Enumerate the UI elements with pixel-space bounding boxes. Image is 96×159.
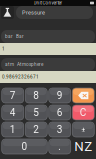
button[interactable]: 5 — [25, 105, 47, 120]
button[interactable]: ± — [72, 122, 94, 137]
button[interactable]: 3 — [49, 122, 71, 137]
staticText: 1 — [10, 124, 16, 135]
button[interactable]: atm — [1, 58, 95, 71]
staticText: 8 — [33, 90, 39, 101]
staticText: bar — [5, 34, 13, 39]
button[interactable]: . — [49, 139, 71, 154]
staticText: 6 — [57, 107, 63, 118]
button[interactable]: 1 — [2, 122, 24, 137]
staticText: . — [58, 141, 61, 152]
button[interactable]: Delete — [72, 88, 94, 103]
staticText: Bar — [16, 34, 24, 39]
button[interactable]: Pressure — [16, 6, 93, 19]
staticText: C — [80, 107, 87, 118]
staticText: 0 — [21, 141, 27, 152]
staticText: Pressure — [22, 9, 45, 16]
button[interactable]: 8 — [25, 88, 47, 103]
button[interactable]: 2 — [25, 122, 47, 137]
staticText: 3 — [57, 124, 63, 135]
staticText: 2 — [33, 124, 39, 135]
staticText: NZ — [74, 139, 92, 154]
button[interactable]: 7 — [2, 88, 24, 103]
staticText: 0.98692326671 — [2, 74, 39, 80]
staticText: 5 — [33, 107, 39, 118]
button[interactable]: 9 — [49, 88, 71, 103]
button[interactable]: 6 — [49, 105, 71, 120]
staticText: 4 — [10, 107, 16, 118]
staticText: atm — [5, 62, 14, 67]
button[interactable]: C — [72, 105, 94, 120]
button[interactable]: 4 — [2, 105, 24, 120]
staticText: 1 — [2, 46, 5, 52]
staticText: Unit Converter — [33, 0, 62, 6]
staticText: ± — [81, 125, 85, 134]
button[interactable]: 0 — [2, 139, 47, 154]
staticText: Atmosphere — [17, 62, 43, 67]
button[interactable]: bar — [1, 30, 95, 43]
staticText: 7 — [10, 90, 16, 101]
button[interactable]: Category — [1, 6, 14, 19]
staticText: 9 — [57, 90, 63, 101]
